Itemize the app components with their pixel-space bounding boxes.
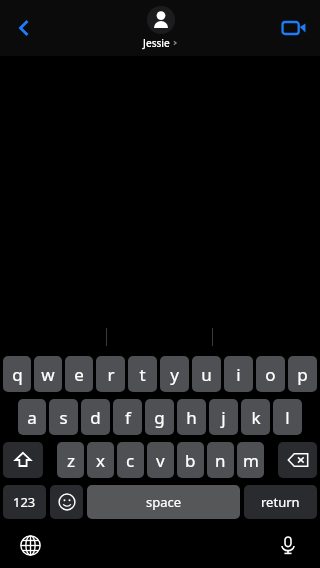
button[interactable]: x — [87, 442, 114, 478]
button[interactable]: t — [128, 356, 157, 392]
staticText: n — [215, 449, 226, 472]
button[interactable]: o — [256, 356, 285, 392]
button[interactable]: Dictate — [270, 527, 306, 563]
button[interactable]: j — [209, 399, 238, 435]
staticText: g — [154, 406, 165, 429]
staticText: c — [126, 449, 135, 472]
button[interactable]: Emoji — [50, 485, 83, 519]
button[interactable]: Video call — [274, 8, 314, 48]
button[interactable]: s — [49, 399, 78, 435]
button[interactable]: q — [3, 356, 31, 392]
button[interactable]: Jessie — [143, 6, 178, 50]
staticText: q — [12, 363, 23, 386]
button[interactable]: Shift — [3, 442, 43, 478]
button[interactable]: e — [65, 356, 93, 392]
button[interactable]: m — [237, 442, 264, 478]
staticText: z — [67, 449, 75, 472]
button[interactable]: n — [207, 442, 234, 478]
staticText: i — [236, 363, 241, 386]
button[interactable]: z — [57, 442, 84, 478]
staticText: l — [285, 406, 290, 429]
staticText: w — [41, 363, 55, 386]
button[interactable]: h — [177, 399, 206, 435]
button[interactable]: space — [87, 485, 240, 519]
staticText: space — [146, 493, 182, 511]
staticText: s — [59, 406, 68, 429]
button[interactable]: v — [147, 442, 174, 478]
staticText: p — [297, 363, 308, 386]
button[interactable]: a — [18, 399, 46, 435]
staticText: y — [170, 363, 179, 386]
button[interactable]: g — [145, 399, 174, 435]
staticText: h — [186, 406, 197, 429]
button[interactable]: r — [96, 356, 125, 392]
staticText: return — [261, 493, 300, 511]
button[interactable]: d — [81, 399, 110, 435]
button[interactable]: i — [224, 356, 253, 392]
staticText: f — [125, 406, 131, 429]
staticText: j — [221, 406, 226, 429]
button[interactable]: return — [244, 485, 317, 519]
button[interactable]: c — [117, 442, 144, 478]
button[interactable]: u — [192, 356, 221, 392]
staticText: e — [74, 363, 84, 386]
button[interactable]: Backspace — [278, 442, 317, 478]
staticText: m — [243, 449, 259, 472]
button[interactable]: b — [177, 442, 204, 478]
staticText: a — [27, 406, 37, 429]
staticText: t — [139, 363, 146, 386]
button[interactable]: Change keyboard — [12, 527, 48, 563]
staticText: 123 — [13, 493, 36, 511]
button[interactable]: p — [288, 356, 317, 392]
button[interactable]: f — [113, 399, 142, 435]
staticText: b — [185, 449, 196, 472]
button[interactable]: l — [273, 399, 302, 435]
button[interactable]: 123 — [3, 485, 46, 519]
staticText: u — [201, 363, 212, 386]
staticText: o — [265, 363, 276, 386]
button[interactable]: y — [160, 356, 189, 392]
button[interactable]: Back — [4, 8, 44, 48]
staticText: v — [156, 449, 165, 472]
staticText: d — [90, 406, 101, 429]
staticText: Jessie — [143, 36, 170, 50]
staticText: r — [107, 363, 115, 386]
staticText: x — [96, 449, 105, 472]
button[interactable]: w — [34, 356, 62, 392]
staticText: k — [251, 406, 261, 429]
button[interactable]: k — [241, 399, 270, 435]
